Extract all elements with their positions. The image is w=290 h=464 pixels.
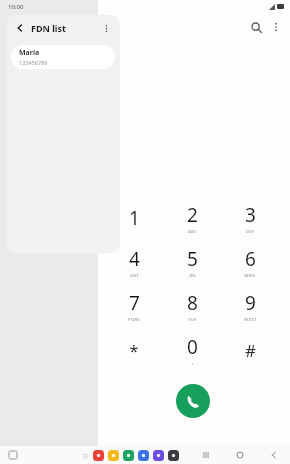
button[interactable]: 5 (166, 242, 218, 282)
button[interactable]: Internet (138, 450, 149, 461)
button[interactable]: Apps (8, 450, 18, 460)
staticText: FDN list (31, 22, 66, 34)
staticText: Maria (19, 48, 40, 58)
staticText: TUV (188, 317, 197, 322)
button[interactable]: Settings (168, 450, 179, 461)
button[interactable]: Gallery (153, 450, 164, 461)
staticText: 0 (187, 334, 198, 360)
button[interactable]: Back (268, 449, 280, 461)
staticText: JKL (189, 273, 197, 278)
staticText: WXYZ (244, 317, 257, 322)
button[interactable]: Back (13, 21, 27, 35)
staticText: 123456789 (19, 59, 48, 66)
staticText: 5 (187, 246, 198, 272)
staticText: DEF (246, 229, 255, 234)
staticText: ABC (188, 229, 197, 234)
staticText: 7 (129, 290, 140, 316)
button[interactable]: 4 (108, 242, 160, 282)
button[interactable]: Maria (11, 45, 115, 69)
staticText: MNO (244, 273, 256, 278)
button[interactable]: More options (266, 17, 286, 37)
staticText: 4 (129, 246, 140, 272)
staticText: 2 (187, 202, 198, 228)
staticText: PQRS (128, 317, 140, 322)
staticText: 10:00 (8, 3, 24, 11)
button[interactable]: # (224, 330, 276, 370)
staticText: GHI (130, 273, 139, 278)
staticText: 9 (245, 290, 256, 316)
button[interactable]: Recents (200, 449, 212, 461)
button[interactable]: Home (234, 449, 246, 461)
button[interactable]: 6 (224, 242, 276, 282)
staticText: 8 (187, 290, 198, 316)
staticText: 3 (245, 202, 256, 228)
button[interactable]: 1 (108, 198, 160, 238)
button[interactable]: More options (99, 21, 113, 35)
button[interactable]: Phone (123, 450, 134, 461)
button[interactable]: Search (246, 17, 266, 37)
button[interactable]: 3 (224, 198, 276, 238)
staticText: + (191, 361, 194, 366)
staticText: 1 (129, 205, 140, 231)
button[interactable]: Camera (93, 450, 104, 461)
button[interactable]: 0 (166, 330, 218, 370)
button[interactable]: 9 (224, 286, 276, 326)
staticText: 6 (245, 246, 256, 272)
button[interactable]: * (108, 330, 160, 370)
button[interactable]: 8 (166, 286, 218, 326)
staticText: * (129, 339, 139, 362)
staticText: # (245, 339, 256, 362)
button[interactable]: Call (176, 384, 210, 418)
button[interactable]: 7 (108, 286, 160, 326)
button[interactable]: Messages (108, 450, 119, 461)
button[interactable]: 2 (166, 198, 218, 238)
